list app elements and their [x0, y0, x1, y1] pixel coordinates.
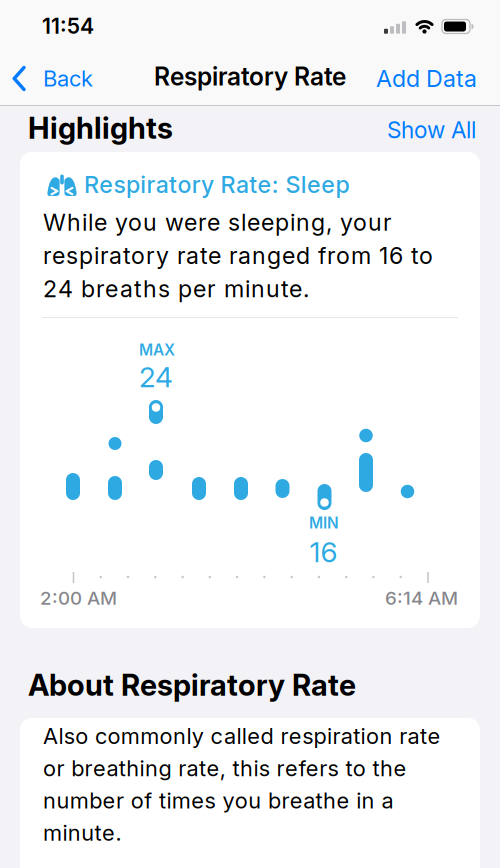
- staticText: Highlights: [28, 110, 173, 146]
- staticText: Add Data: [376, 64, 477, 93]
- staticText: Back: [43, 65, 93, 92]
- staticText: 11:54: [42, 13, 94, 39]
- staticText: About Respiratory Rate: [28, 667, 356, 703]
- button[interactable]: Add Data: [317, 64, 477, 93]
- staticText: 24: [139, 360, 173, 394]
- button[interactable]: Respiratory Rate: Sleep: [20, 152, 480, 628]
- staticText: MIN: [309, 514, 339, 532]
- staticText: 16: [309, 535, 337, 569]
- button[interactable]: Show All: [326, 116, 476, 144]
- staticText: Show All: [387, 116, 476, 144]
- staticText: 2:00 AM: [40, 587, 117, 609]
- staticText: MAX: [139, 341, 175, 359]
- staticText: Respiratory Rate: [154, 62, 346, 91]
- button[interactable]: Back: [12, 65, 132, 92]
- staticText: Respiratory Rate: Sleep: [84, 170, 350, 199]
- staticText: Also commonly called respiration rate or…: [43, 723, 440, 846]
- staticText: While you were sleeping, your respirator…: [43, 208, 433, 303]
- staticText: 6:14 AM: [385, 587, 458, 609]
